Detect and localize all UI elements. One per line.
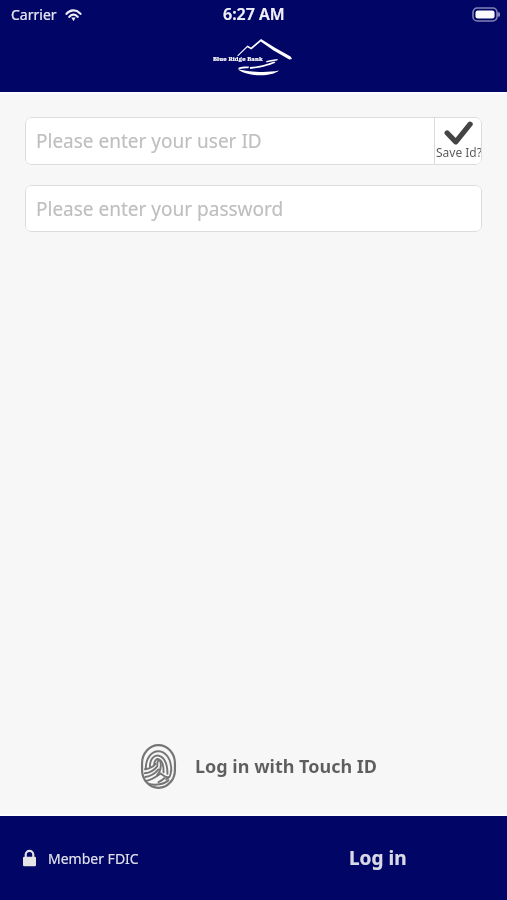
staticText: Save Id? — [436, 144, 482, 160]
other: Touch ID fingerprint — [141, 744, 176, 789]
staticText: Log in with Touch ID — [195, 754, 378, 779]
button[interactable]: Touch ID fingerprint — [0, 738, 507, 794]
staticText: Carrier — [11, 5, 57, 24]
staticText: 6:27 AM — [223, 3, 285, 25]
staticText: Blue Ridge Bank — [213, 55, 263, 63]
staticText: Log in — [349, 845, 407, 871]
button[interactable]: Please enter your password — [25, 185, 482, 232]
staticText: Member FDIC — [48, 849, 139, 868]
button[interactable]: Please enter your user ID — [25, 117, 482, 165]
button[interactable]: Save Id? — [435, 117, 482, 165]
staticText: Please enter your password — [36, 196, 284, 222]
button[interactable]: Member FDIC — [23, 849, 139, 868]
staticText: Please enter your user ID — [36, 128, 434, 154]
button[interactable]: Log in — [349, 845, 407, 871]
